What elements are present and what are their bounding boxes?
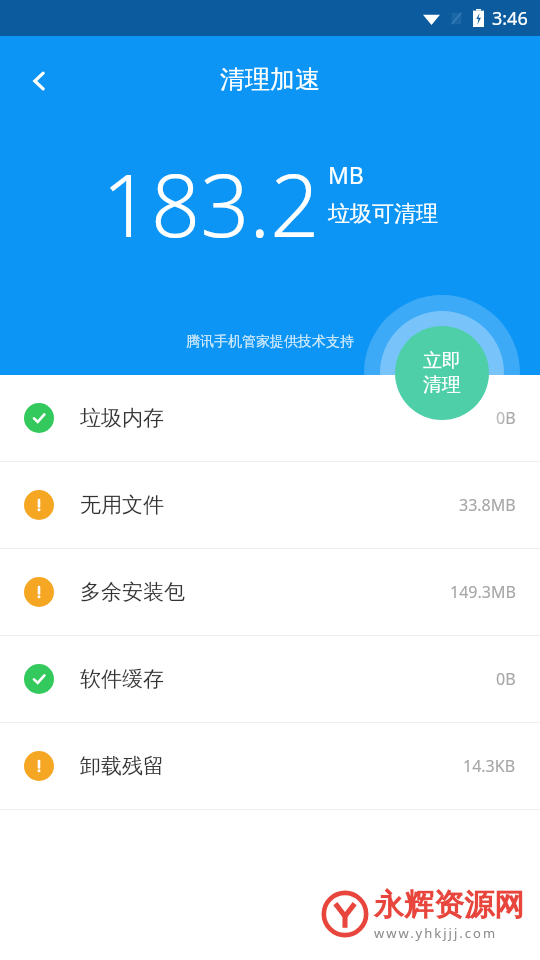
staticText: 183.2 bbox=[102, 145, 320, 262]
staticText: 无用文件 bbox=[80, 492, 164, 518]
staticText: 清理加速 bbox=[0, 64, 540, 95]
staticText: MB bbox=[328, 159, 364, 190]
button[interactable]: Back bbox=[12, 54, 66, 108]
staticText: 149.3MB bbox=[450, 581, 516, 603]
button[interactable]: 软件缓存 bbox=[0, 636, 540, 722]
staticText: 0B bbox=[496, 668, 516, 690]
staticText: 33.8MB bbox=[459, 494, 516, 516]
staticText: 腾讯手机管家提供技术支持 bbox=[0, 333, 540, 351]
staticText: www.yhkjjj.com bbox=[374, 924, 498, 942]
staticText: 垃圾可清理 bbox=[328, 200, 438, 228]
staticText: 0B bbox=[496, 407, 516, 429]
button[interactable]: 立即 bbox=[364, 295, 520, 451]
staticText: 清理 bbox=[423, 373, 461, 397]
staticText: 卸载残留 bbox=[80, 753, 164, 779]
staticText: 3:46 bbox=[492, 6, 528, 31]
staticText: 永辉资源网 bbox=[374, 886, 524, 924]
staticText: 立即 bbox=[423, 349, 461, 373]
staticText: 14.3KB bbox=[463, 755, 516, 777]
button[interactable]: 无用文件 bbox=[0, 462, 540, 548]
staticText: 软件缓存 bbox=[80, 666, 164, 692]
button[interactable]: 多余安装包 bbox=[0, 549, 540, 635]
button[interactable]: 垃圾内存 bbox=[0, 375, 540, 461]
staticText: 多余安装包 bbox=[80, 579, 185, 605]
button[interactable]: 卸载残留 bbox=[0, 723, 540, 809]
staticText: 垃圾内存 bbox=[80, 405, 164, 431]
